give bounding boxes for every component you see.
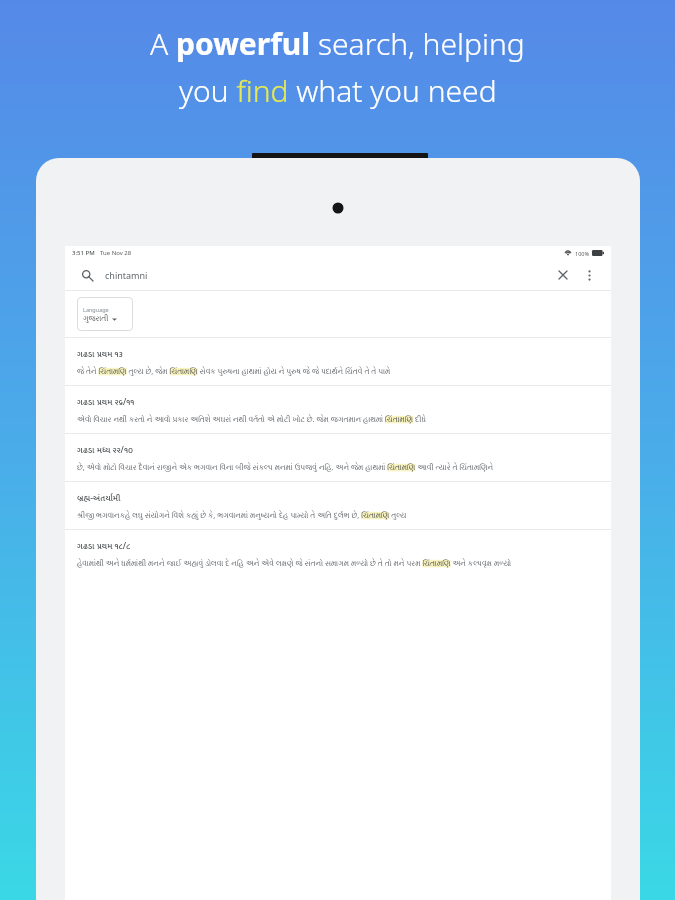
- button[interactable]: બ્રહ્મ-અંતર્યામી: [65, 482, 611, 529]
- staticText: Tue Nov 28: [100, 249, 132, 257]
- staticText: શ્રીજી ભગવાનકહે લઘુ સંયોગને વિશે કહ્યું …: [77, 510, 407, 520]
- staticText: ગુજરાતી: [83, 315, 109, 323]
- staticText: છે, એવો મોટો વિચાર દૈવાનં રાજીને એક ભગવા…: [77, 462, 494, 472]
- button[interactable]: ગઢડા પ્રથમ ૨૬/૧૧: [65, 386, 611, 433]
- button[interactable]: More options: [579, 265, 599, 285]
- button[interactable]: ગઢડા પ્રથમ ૧૩: [65, 338, 611, 385]
- staticText: હેવામાંથી અને ધર્મમાંથી મનને જાઈ અહ્યવું…: [77, 558, 512, 568]
- staticText: you find what you need: [179, 70, 497, 111]
- button[interactable]: ગઢડા મધ્ય ૨૨/૧૦: [65, 434, 611, 481]
- staticText: ગઢડા પ્રથમ ૨૬/૧૧: [77, 395, 135, 409]
- staticText: ગઢડા પ્રથમ ૧૮/૮: [77, 539, 131, 553]
- staticText: ગઢડા મધ્ય ૨૨/૧૦: [77, 443, 133, 457]
- staticText: Language: [83, 306, 109, 313]
- button[interactable]: Search: [65, 260, 611, 290]
- staticText: ગઢડા પ્રથમ ૧૩: [77, 347, 123, 361]
- button[interactable]: ગઢડા પ્રથમ ૧૮/૮: [65, 530, 611, 577]
- button[interactable]: Language: [77, 297, 133, 331]
- staticText: 3:51 PM: [72, 249, 95, 257]
- staticText: 100%: [575, 250, 590, 257]
- button[interactable]: Clear search: [553, 265, 573, 285]
- button[interactable]: Search: [77, 265, 97, 285]
- staticText: A powerful search, helping: [150, 23, 525, 64]
- staticText: જે તેને ચિંતામણિ તુલ્ય છે, જેમ ચિંતામણિ …: [77, 366, 391, 376]
- staticText: chintamni: [105, 269, 148, 281]
- staticText: એવો વિચાર નથી કરતો ને આવો પ્રકાર અતિશે અ…: [77, 414, 426, 424]
- staticText: બ્રહ્મ-અંતર્યામી: [77, 491, 121, 505]
